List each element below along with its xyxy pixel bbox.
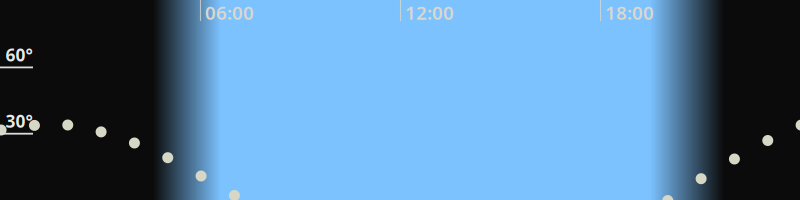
staticText: 30° xyxy=(5,110,32,133)
staticText: 60° xyxy=(5,43,32,66)
staticText: 18:00 xyxy=(605,0,654,25)
staticText: 06:00 xyxy=(205,0,254,25)
button[interactable]: Moon altitude chart xyxy=(0,0,800,200)
staticText: 12:00 xyxy=(405,0,454,25)
